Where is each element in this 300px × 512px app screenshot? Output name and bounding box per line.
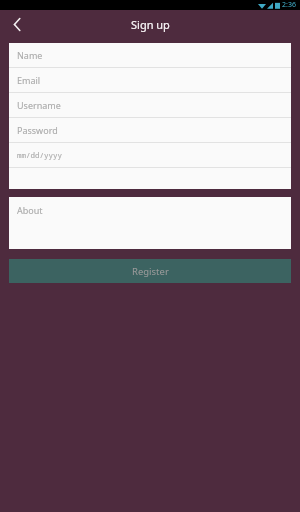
- button[interactable]: Register: [9, 259, 291, 283]
- staticText: Name: [17, 49, 43, 61]
- button[interactable]: Name: [9, 43, 291, 67]
- staticText: Email: [17, 74, 41, 86]
- staticText: Register: [132, 265, 169, 278]
- staticText: 2:36: [282, 0, 296, 10]
- staticText: Password: [17, 124, 58, 136]
- staticText: Sign up: [131, 17, 170, 32]
- staticText: About: [17, 204, 43, 216]
- button[interactable]: About: [9, 197, 291, 249]
- button[interactable]: Username: [9, 93, 291, 117]
- button[interactable]: mm/dd/yyyy: [9, 143, 291, 167]
- staticText: Username: [17, 99, 61, 111]
- button[interactable]: Back: [0, 10, 34, 38]
- button[interactable]: Email: [9, 68, 291, 92]
- staticText: mm/dd/yyyy: [17, 150, 62, 160]
- button[interactable]: Password: [9, 118, 291, 142]
